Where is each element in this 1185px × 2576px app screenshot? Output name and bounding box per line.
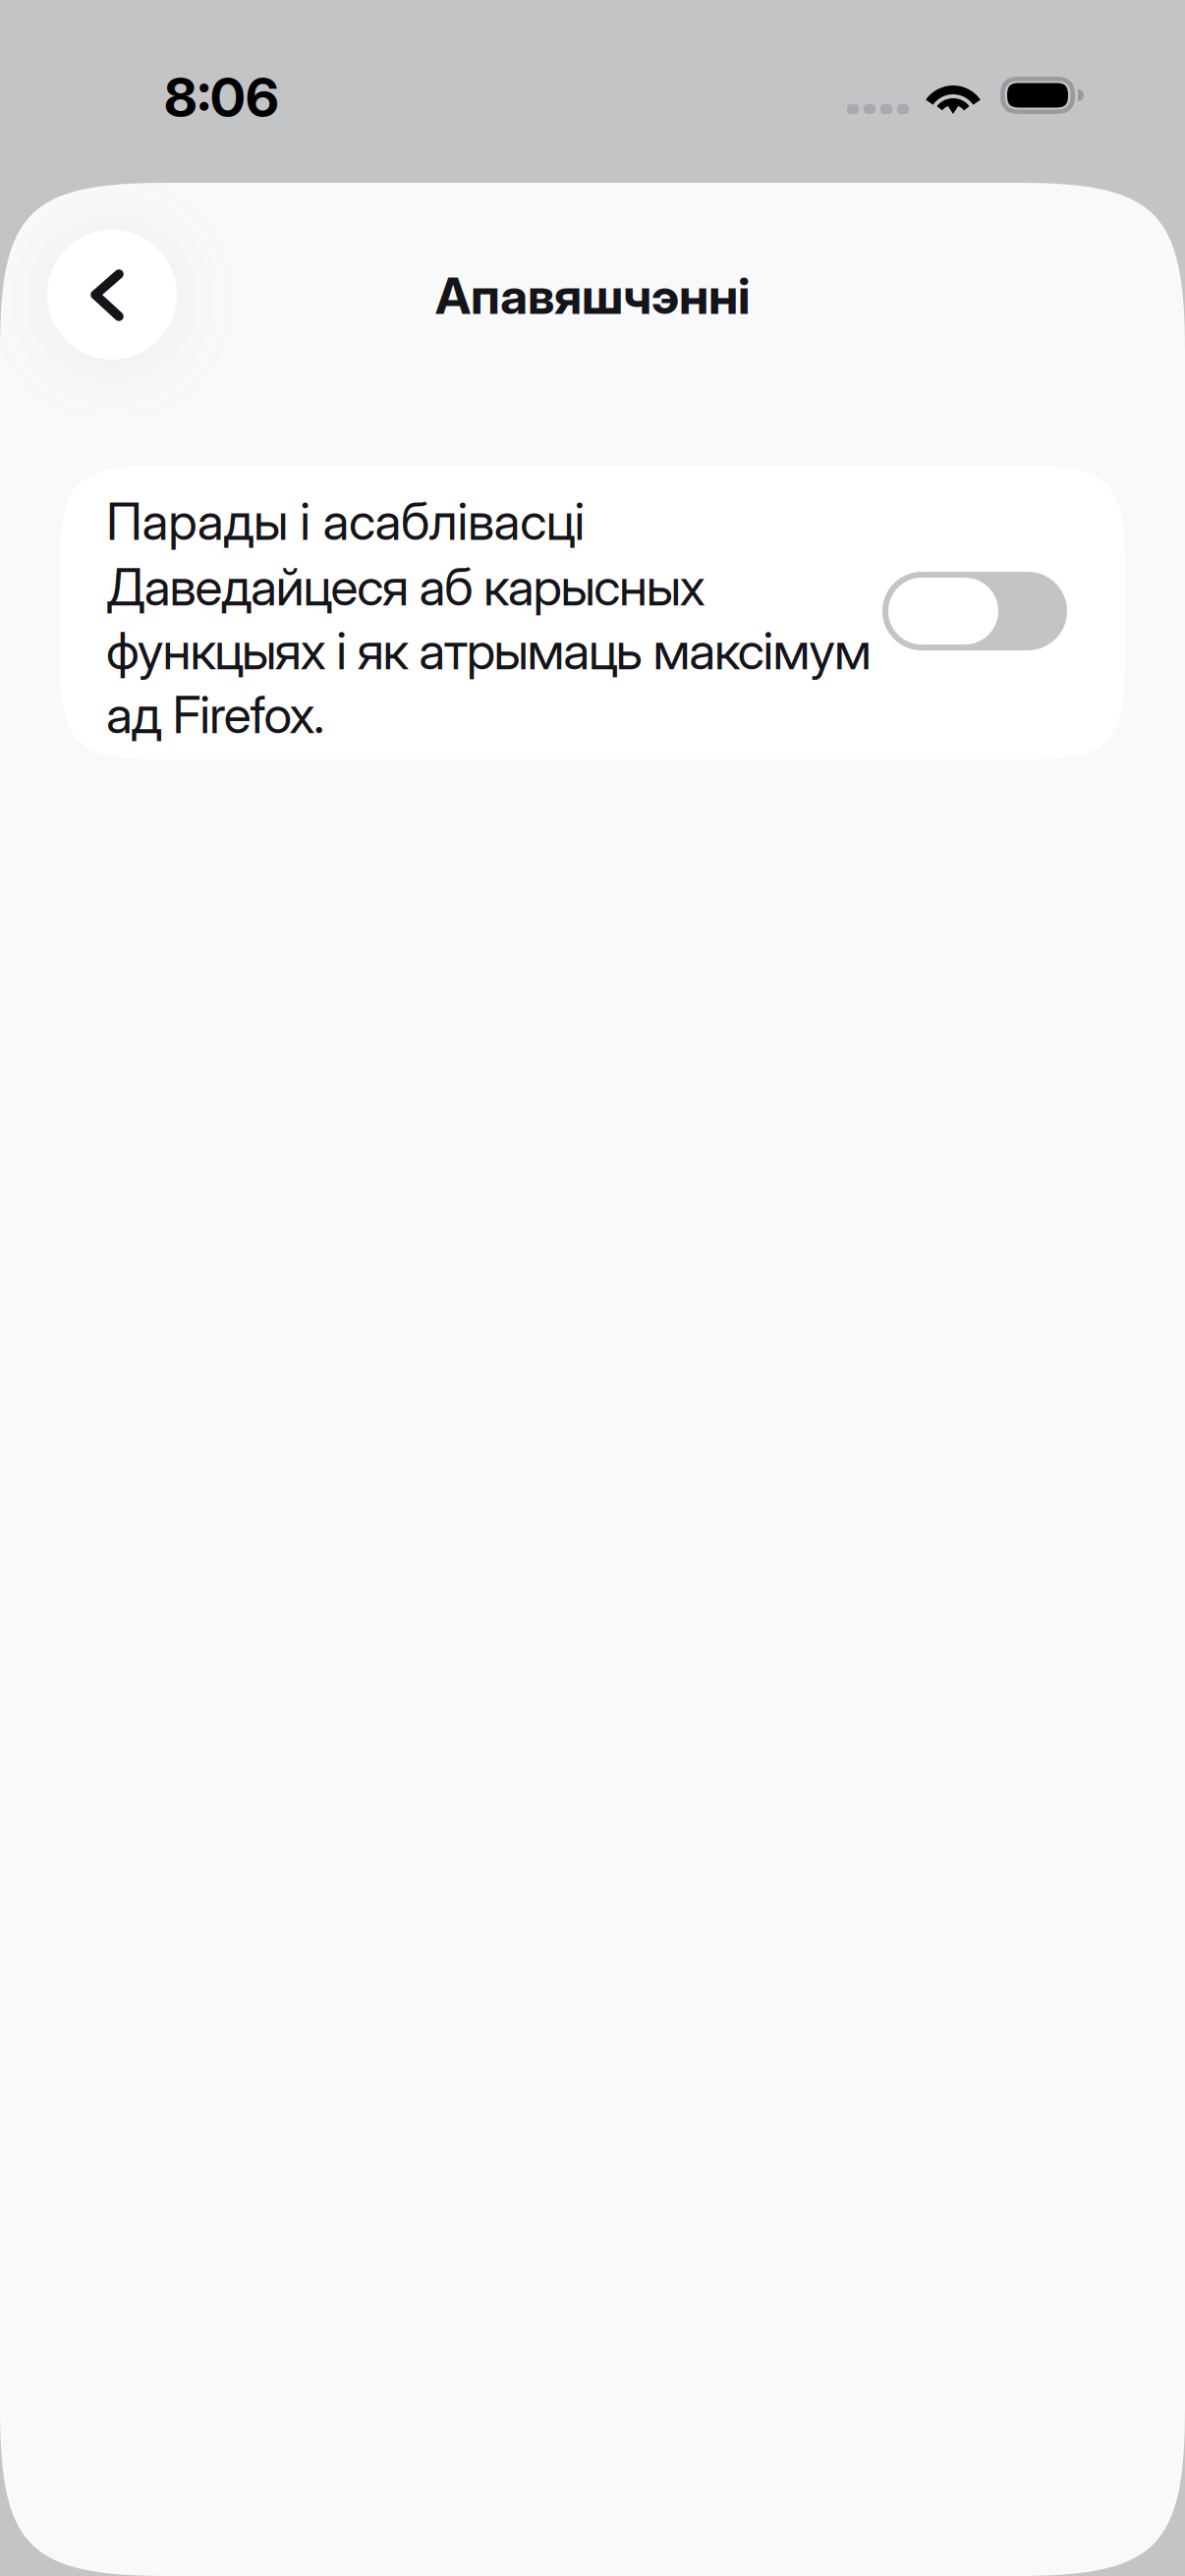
staticText: Парады і асаблівасці <box>106 490 585 552</box>
staticText: 8:06 <box>164 65 279 130</box>
button[interactable]: Парады і асаблівасці <box>0 466 1185 759</box>
staticText: Даведайцеся аб карысных функцыях і як ат… <box>106 556 872 745</box>
button[interactable]: Back <box>47 230 177 360</box>
staticText: Апавяшчэнні <box>435 266 750 326</box>
